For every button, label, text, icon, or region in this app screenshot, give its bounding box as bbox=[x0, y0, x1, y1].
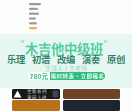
button[interactable]: 780元 bbox=[28, 72, 105, 80]
staticText: 主讲人丨王老师 bbox=[45, 64, 87, 72]
staticText: 改编 bbox=[57, 52, 75, 66]
staticText: 原创 bbox=[107, 52, 125, 66]
staticText: 重磅上线 bbox=[27, 94, 47, 101]
button[interactable]: Acoustic guitar course bbox=[63, 89, 120, 99]
staticText: 780元 bbox=[29, 71, 48, 81]
button[interactable]: Course chapters bbox=[29, 3, 42, 31]
staticText: 乐理 bbox=[7, 52, 25, 66]
staticText: 初谱 bbox=[32, 52, 50, 66]
staticText: 全新系列 bbox=[27, 87, 47, 94]
staticText: 演奏 bbox=[82, 52, 100, 66]
staticText: ” bbox=[104, 39, 111, 48]
button[interactable]: Fender course bbox=[63, 100, 120, 111]
staticText: 木吉他中级班 bbox=[25, 39, 103, 58]
staticText: 限时特惠·立即报名 bbox=[50, 72, 104, 80]
button[interactable]: New series bbox=[12, 89, 60, 99]
staticText: “ bbox=[17, 39, 24, 48]
button[interactable]: Lesson video bbox=[12, 100, 60, 111]
